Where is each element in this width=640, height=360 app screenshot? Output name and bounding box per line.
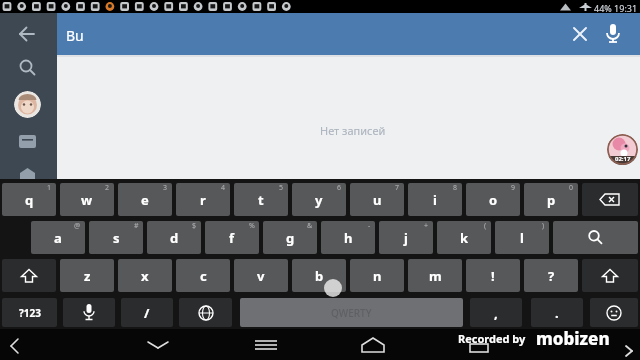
- staticText: q: [25, 191, 34, 209]
- staticText: (: [484, 221, 487, 231]
- staticText: 6: [337, 183, 342, 193]
- button[interactable]: [360, 336, 386, 354]
- staticText: ?123: [19, 306, 41, 320]
- button[interactable]: /: [121, 298, 173, 327]
- staticText: #: [134, 221, 139, 231]
- button[interactable]: g: [263, 221, 317, 254]
- button[interactable]: ?: [524, 259, 578, 292]
- staticText: f: [229, 229, 235, 247]
- button[interactable]: d: [147, 221, 201, 254]
- staticText: b: [315, 267, 324, 285]
- staticText: &: [307, 221, 313, 231]
- button[interactable]: i: [408, 183, 462, 216]
- button[interactable]: [2, 259, 56, 292]
- staticText: -: [368, 221, 371, 231]
- button[interactable]: l: [495, 221, 549, 254]
- staticText: .: [555, 304, 559, 322]
- button[interactable]: [601, 21, 625, 47]
- button[interactable]: j: [379, 221, 433, 254]
- button[interactable]: !: [466, 259, 520, 292]
- button[interactable]: [568, 22, 592, 46]
- staticText: /: [144, 304, 150, 322]
- staticText: ): [542, 221, 545, 231]
- staticText: y: [315, 191, 323, 209]
- staticText: %: [249, 221, 255, 231]
- staticText: $: [192, 221, 197, 231]
- staticText: k: [460, 229, 469, 247]
- staticText: 4: [221, 183, 226, 193]
- staticText: Recorded by: [458, 331, 526, 346]
- button[interactable]: y: [292, 183, 346, 216]
- button[interactable]: v: [234, 259, 288, 292]
- button[interactable]: [179, 298, 232, 327]
- staticText: @: [74, 221, 81, 231]
- button[interactable]: [582, 183, 638, 216]
- button[interactable]: m: [408, 259, 462, 292]
- button[interactable]: s: [89, 221, 143, 254]
- button[interactable]: c: [176, 259, 230, 292]
- staticText: ,: [494, 304, 498, 322]
- button[interactable]: [18, 132, 38, 150]
- staticText: 3: [163, 183, 168, 193]
- staticText: Нет записей: [320, 123, 386, 138]
- button[interactable]: [14, 91, 41, 118]
- button[interactable]: k: [437, 221, 491, 254]
- staticText: c: [200, 267, 207, 285]
- button[interactable]: ,: [470, 298, 522, 327]
- staticText: 0: [569, 183, 574, 193]
- button[interactable]: e: [118, 183, 172, 216]
- staticText: g: [286, 229, 295, 247]
- staticText: t: [258, 191, 264, 209]
- button[interactable]: b: [292, 259, 346, 292]
- staticText: n: [373, 267, 382, 285]
- button[interactable]: [63, 298, 115, 327]
- staticText: s: [113, 229, 120, 247]
- button[interactable]: .: [531, 298, 583, 327]
- staticText: QWERTY: [331, 306, 372, 320]
- button[interactable]: t: [234, 183, 288, 216]
- button[interactable]: h: [321, 221, 375, 254]
- button[interactable]: [253, 338, 279, 352]
- button[interactable]: [6, 337, 24, 355]
- staticText: r: [200, 191, 206, 209]
- button[interactable]: x: [118, 259, 172, 292]
- staticText: a: [54, 229, 62, 247]
- staticText: 1: [47, 183, 52, 193]
- staticText: o: [489, 191, 498, 209]
- staticText: 2: [105, 183, 110, 193]
- button[interactable]: [590, 298, 638, 327]
- staticText: 8: [453, 183, 458, 193]
- button[interactable]: [17, 58, 37, 78]
- staticText: mobizen: [536, 327, 610, 350]
- button[interactable]: a: [31, 221, 85, 254]
- button[interactable]: 02:17: [607, 134, 638, 165]
- staticText: j: [404, 229, 408, 247]
- staticText: x: [141, 267, 149, 285]
- staticText: w: [81, 191, 93, 209]
- button[interactable]: p: [524, 183, 578, 216]
- button[interactable]: [553, 221, 638, 254]
- staticText: l: [520, 229, 524, 247]
- staticText: ?: [548, 267, 555, 285]
- button[interactable]: r: [176, 183, 230, 216]
- button[interactable]: ?123: [2, 298, 57, 327]
- staticText: 02:17: [615, 155, 631, 163]
- button[interactable]: [17, 25, 37, 43]
- button[interactable]: q: [2, 183, 56, 216]
- staticText: 5: [279, 183, 284, 193]
- button[interactable]: n: [350, 259, 404, 292]
- button[interactable]: u: [350, 183, 404, 216]
- staticText: i: [433, 191, 437, 209]
- button[interactable]: [146, 338, 170, 352]
- staticText: +: [424, 221, 429, 231]
- button[interactable]: z: [60, 259, 114, 292]
- staticText: u: [373, 191, 382, 209]
- staticText: v: [257, 267, 265, 285]
- button[interactable]: w: [60, 183, 114, 216]
- staticText: !: [491, 267, 495, 285]
- button[interactable]: f: [205, 221, 259, 254]
- button[interactable]: o: [466, 183, 520, 216]
- button[interactable]: [582, 259, 638, 292]
- staticText: Bu: [66, 26, 84, 45]
